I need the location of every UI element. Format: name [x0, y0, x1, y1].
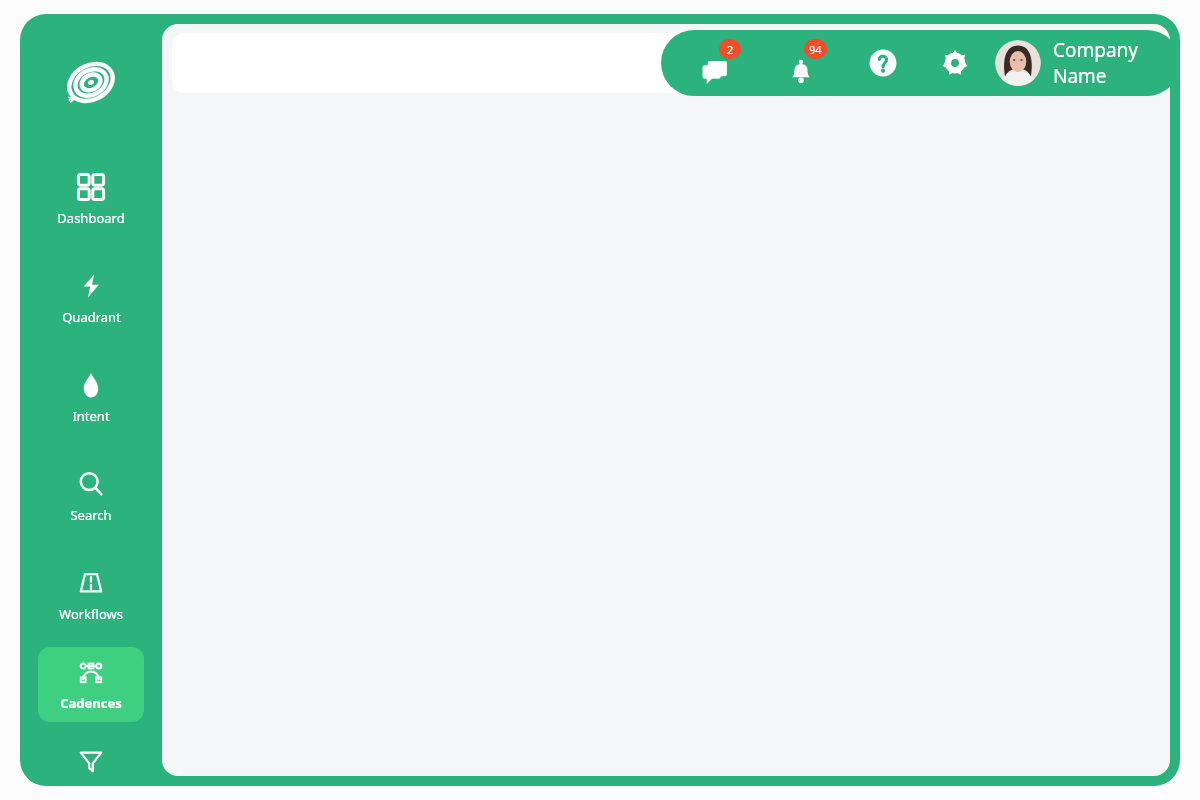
staticText: Company Name [1053, 37, 1180, 89]
staticText: Workflows [59, 605, 123, 623]
staticText: Search [70, 506, 112, 524]
button[interactable]: Home logo [63, 56, 119, 112]
staticText: 94 [809, 42, 822, 57]
button[interactable]: Workflows [38, 558, 144, 633]
button[interactable]: Search [172, 33, 692, 93]
button[interactable]: Quadrant [38, 261, 144, 336]
staticText: 2 [727, 42, 734, 57]
staticText: Intent [72, 407, 110, 425]
staticText: Dashboard [57, 209, 125, 227]
staticText: Quadrant [62, 308, 121, 326]
button[interactable]: Profile [995, 40, 1041, 86]
button[interactable]: Dashboard [38, 162, 144, 237]
staticText: Cadences [60, 694, 122, 712]
button[interactable]: Search [38, 459, 144, 534]
button[interactable]: Messages [693, 41, 737, 85]
button[interactable]: Intent [38, 360, 144, 435]
button[interactable]: Notifications [779, 41, 823, 85]
button[interactable]: Cadences [38, 647, 144, 722]
button[interactable]: Help [863, 43, 903, 83]
button[interactable]: Settings [935, 43, 975, 83]
button[interactable]: Pipeline [38, 736, 144, 786]
